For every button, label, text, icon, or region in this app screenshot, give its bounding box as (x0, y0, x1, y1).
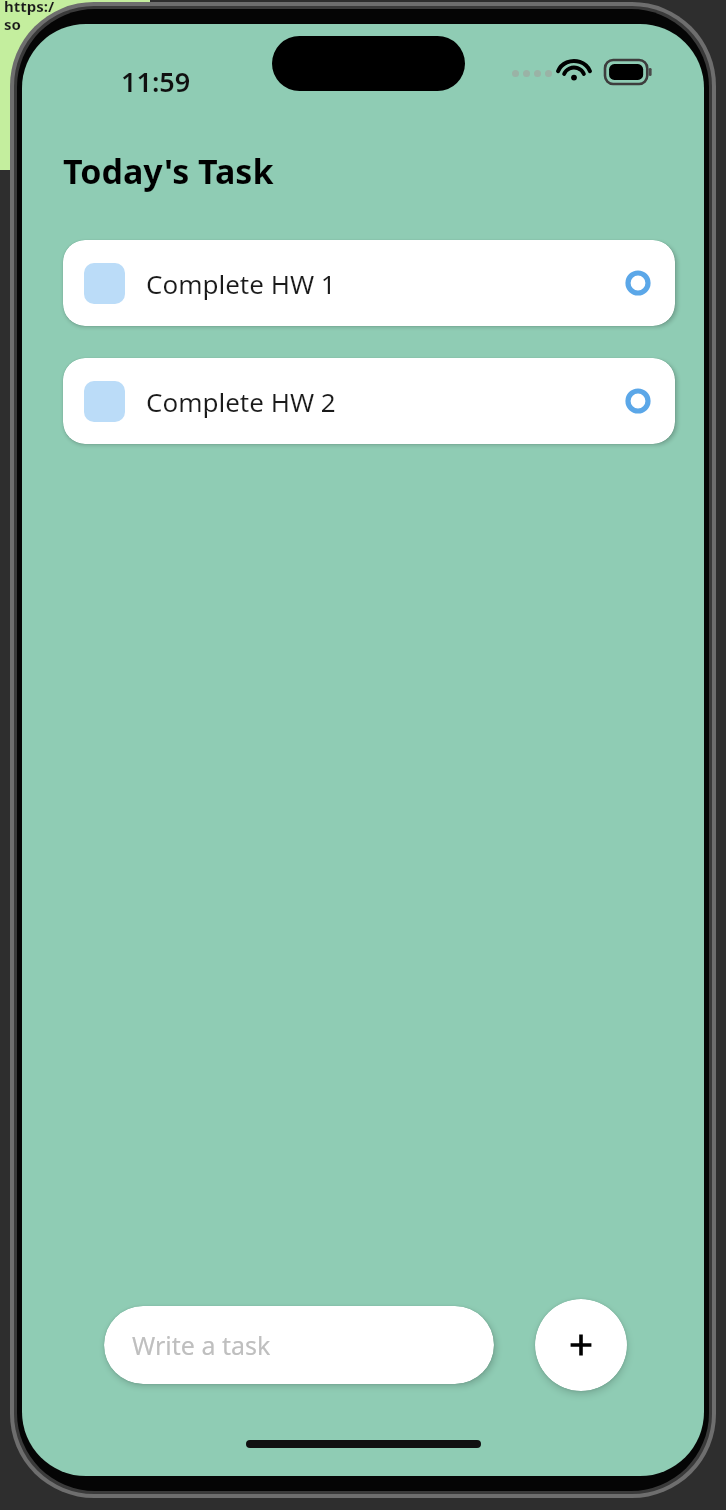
button[interactable]: Mark complete (625, 388, 651, 414)
staticText: so (4, 14, 21, 34)
button[interactable]: Mark complete (625, 270, 651, 296)
staticText: Today's Task (63, 148, 274, 194)
button[interactable]: Write a task (104, 1306, 494, 1384)
button[interactable]: Add task (535, 1299, 627, 1391)
button[interactable]: Complete HW 1 (63, 240, 675, 326)
staticText: 11:59 (121, 63, 191, 100)
button[interactable]: Complete HW 2 (63, 358, 675, 444)
staticText: Write a task (132, 1328, 271, 1362)
staticText: https:/ (4, 0, 55, 16)
staticText: Complete HW 2 (146, 384, 625, 419)
staticText: Complete HW 1 (146, 266, 625, 301)
